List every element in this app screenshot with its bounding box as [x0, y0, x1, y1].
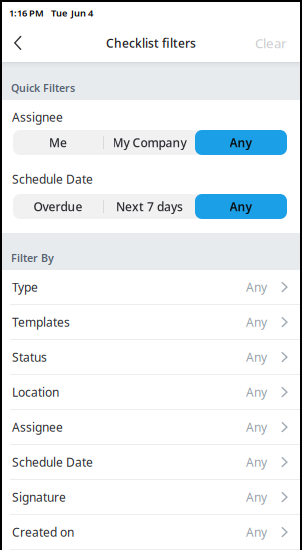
staticText: Any [246, 454, 267, 470]
staticText: Any [246, 419, 267, 435]
button[interactable]: Created on [2, 515, 300, 550]
staticText: Signature [12, 489, 66, 505]
staticText: Any [246, 524, 267, 540]
staticText: Assignee [12, 109, 63, 125]
button[interactable]: Overdue [13, 194, 103, 219]
staticText: Tue [51, 7, 67, 19]
staticText: Jun 4 [71, 7, 93, 19]
button[interactable]: Templates [2, 305, 300, 340]
staticText: Any [246, 314, 267, 330]
button[interactable]: Status [2, 340, 300, 375]
button[interactable]: Location [2, 375, 300, 410]
staticText: Quick Filters [11, 81, 75, 95]
staticText: Checklist filters [106, 35, 196, 51]
button[interactable]: Me [13, 130, 103, 155]
staticText: Schedule Date [12, 171, 93, 187]
staticText: Created on [12, 524, 74, 540]
button[interactable]: Any [195, 194, 287, 219]
staticText: Schedule Date [12, 454, 93, 470]
staticText: Filter By [11, 251, 54, 265]
button[interactable]: Any [195, 130, 287, 155]
staticText: Any [229, 134, 252, 150]
staticText: Status [12, 349, 47, 365]
button[interactable]: Clear [255, 24, 300, 62]
staticText: My Company [112, 134, 186, 150]
button[interactable]: Assignee [2, 410, 300, 445]
staticText: Any [246, 349, 267, 365]
staticText: Me [49, 134, 67, 150]
staticText: Clear [255, 34, 287, 52]
button[interactable]: Signature [2, 480, 300, 515]
staticText: 1:16 PM [9, 7, 44, 19]
button[interactable]: Back [2, 24, 30, 62]
staticText: Assignee [12, 419, 63, 435]
staticText: Location [12, 384, 59, 400]
staticText: Any [246, 489, 267, 505]
staticText: Templates [12, 314, 70, 330]
button[interactable]: Schedule Date [2, 445, 300, 480]
staticText: Any [246, 279, 267, 295]
staticText: Overdue [33, 198, 82, 214]
button[interactable]: My Company [104, 130, 195, 155]
staticText: Any [246, 384, 267, 400]
button[interactable]: Next 7 days [104, 194, 195, 219]
staticText: Any [229, 198, 252, 214]
staticText: Next 7 days [116, 198, 183, 214]
staticText: Type [12, 279, 38, 295]
button[interactable]: Type [2, 270, 300, 305]
